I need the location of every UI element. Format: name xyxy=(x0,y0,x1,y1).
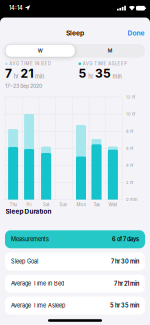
staticText: hr xyxy=(88,73,93,80)
staticText: 7 hr 21 min xyxy=(114,280,139,287)
staticText: 35 xyxy=(95,66,111,81)
staticText: Done xyxy=(127,29,144,37)
staticText: 7 hr 30 min xyxy=(111,258,139,265)
staticText: min xyxy=(35,73,44,80)
button[interactable]: Measurements xyxy=(5,230,145,248)
staticText: 17–23 Sep 2020 xyxy=(5,83,42,89)
button[interactable]: Average Time in Bed xyxy=(5,275,145,293)
staticText: Sleep Goal xyxy=(11,258,38,265)
staticText: 4 hr xyxy=(126,163,134,168)
staticText: 8 hr xyxy=(126,129,134,134)
staticText: Sleep xyxy=(66,29,84,37)
staticText: Mon xyxy=(76,202,85,207)
staticText: Tue xyxy=(93,202,99,207)
staticText: 10 hr xyxy=(126,112,136,117)
staticText: hr xyxy=(14,73,19,80)
staticText: 7 xyxy=(5,66,12,81)
staticText: Fri xyxy=(27,202,32,207)
button[interactable]: W xyxy=(6,45,75,57)
staticText: 12 hr xyxy=(126,94,136,99)
staticText: Measurements xyxy=(11,236,49,243)
staticText: Sleep Duration xyxy=(5,208,51,215)
button[interactable]: M xyxy=(80,45,140,57)
staticText: AVG TIME IN BED xyxy=(9,61,51,66)
staticText: AVG TIME ASLEEP xyxy=(83,61,127,66)
staticText: 6 hr xyxy=(126,146,134,151)
staticText: Average Time in Bed xyxy=(11,280,64,287)
staticText: 6 of 7 days xyxy=(112,236,139,243)
staticText: Thu xyxy=(10,202,17,207)
button[interactable]: Sleep Goal xyxy=(5,252,145,270)
staticText: 5 xyxy=(78,66,86,81)
staticText: Wed xyxy=(108,202,117,207)
staticText: Sat xyxy=(43,202,49,207)
staticText: W xyxy=(38,48,43,54)
staticText: 2 hr xyxy=(126,180,134,185)
staticText: 21 xyxy=(20,66,33,81)
staticText: 14:14 xyxy=(9,5,23,11)
staticText: 5 hr 35 min xyxy=(110,302,139,309)
staticText: Sun xyxy=(59,202,66,207)
staticText: min xyxy=(113,73,122,80)
staticText: Average Time Asleep xyxy=(11,302,65,309)
button[interactable]: Average Time Asleep xyxy=(5,296,145,314)
staticText: M xyxy=(108,48,113,54)
button[interactable]: Done xyxy=(127,29,150,37)
staticText: 0 min xyxy=(126,197,137,202)
